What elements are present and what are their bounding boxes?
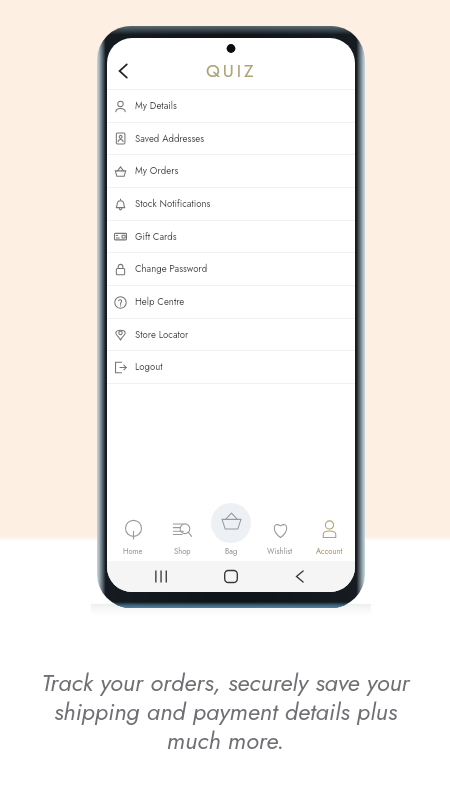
button[interactable]: Stock Notifications (107, 188, 355, 220)
button[interactable]: Account (306, 501, 352, 561)
button[interactable]: Back (107, 54, 138, 88)
staticText: Wishlist (267, 546, 293, 557)
button[interactable]: Shop (159, 501, 205, 561)
staticText: Account (316, 546, 343, 557)
staticText: Saved Addresses (135, 132, 205, 146)
staticText: Logout (135, 360, 163, 374)
button[interactable]: Gift Cards (107, 221, 355, 252)
button[interactable]: Help Centre (107, 286, 355, 318)
button[interactable]: Saved Addresses (107, 123, 355, 154)
staticText: Help Centre (135, 295, 185, 309)
button[interactable]: Home (110, 501, 156, 561)
staticText: Stock Notifications (135, 197, 211, 211)
staticText: Store Locator (135, 328, 189, 342)
button[interactable]: My Details (107, 90, 355, 122)
staticText: QUIZ (206, 58, 257, 83)
button[interactable]: Wishlist (257, 501, 303, 561)
button[interactable]: Bag (208, 501, 254, 561)
button[interactable]: Logout (107, 351, 355, 383)
staticText: My Details (135, 99, 177, 113)
button[interactable]: Change Password (107, 253, 355, 285)
staticText: Shop (174, 546, 191, 557)
button[interactable]: My Orders (107, 155, 355, 187)
staticText: Track your orders, securely save your sh… (41, 665, 410, 758)
staticText: Change Password (135, 262, 208, 276)
staticText: Bag (225, 546, 238, 557)
staticText: My Orders (135, 164, 179, 178)
staticText: Gift Cards (135, 230, 177, 244)
staticText: Home (123, 546, 143, 557)
button[interactable]: Store Locator (107, 319, 355, 350)
